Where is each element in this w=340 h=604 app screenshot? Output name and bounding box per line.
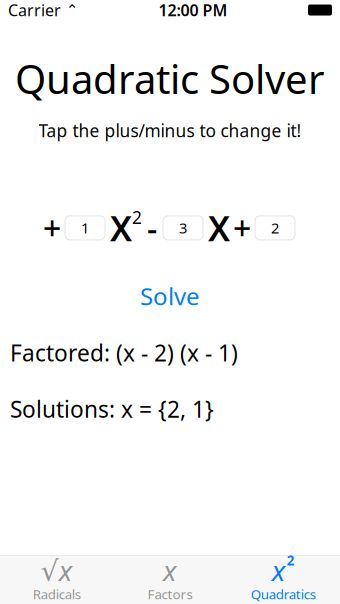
staticText: + xyxy=(43,207,61,249)
button[interactable]: + xyxy=(232,213,252,243)
staticText: 1 xyxy=(81,218,89,238)
staticText: X xyxy=(110,205,132,251)
button[interactable]: + xyxy=(42,213,62,243)
button[interactable]: Solve xyxy=(126,274,214,318)
staticText: 3 xyxy=(179,218,187,238)
button[interactable]: - xyxy=(144,213,160,243)
staticText: Factors xyxy=(147,585,192,603)
staticText: 2 xyxy=(271,218,279,238)
staticText: √x xyxy=(41,552,73,589)
button[interactable]: 1 xyxy=(65,216,105,240)
button[interactable]: x xyxy=(227,556,340,604)
staticText: ⌃ xyxy=(61,2,78,18)
staticText: Quadratic Solver xyxy=(15,52,325,105)
staticText: 2 xyxy=(132,206,142,229)
staticText: Quadratics xyxy=(251,585,316,603)
staticText: Tap the plus/minus to change it! xyxy=(38,119,301,142)
staticText: Factored: (x - 2) (x - 1) xyxy=(10,338,238,368)
staticText: Carrier xyxy=(8,0,61,21)
button[interactable]: 3 xyxy=(163,216,203,240)
staticText: 2 xyxy=(287,552,295,569)
staticText: Solutions: x = {2, 1} xyxy=(10,394,214,424)
staticText: Solve xyxy=(140,280,200,312)
staticText: - xyxy=(147,207,157,249)
staticText: x xyxy=(163,552,177,589)
staticText: X xyxy=(208,205,230,251)
staticText: x xyxy=(272,552,286,589)
button[interactable]: 2 xyxy=(255,216,295,240)
staticText: + xyxy=(233,207,251,249)
staticText: 12:00 PM xyxy=(158,0,227,21)
button[interactable]: √x xyxy=(0,556,113,604)
button[interactable]: x xyxy=(113,556,227,604)
staticText: Radicals xyxy=(33,585,81,603)
